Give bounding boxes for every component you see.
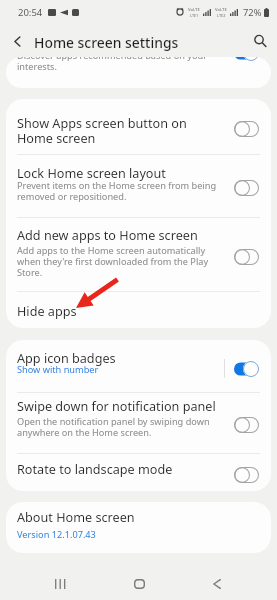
staticText: 20:54 (18, 6, 43, 19)
staticText: Add new apps to Home screen (17, 226, 198, 243)
button[interactable]: Lock Home screen layout (6, 155, 271, 217)
staticText: LTE1 (190, 13, 199, 18)
staticText: Hide apps (17, 302, 77, 319)
button[interactable]: Back (199, 566, 235, 600)
staticText: 72% (243, 6, 262, 19)
button[interactable]: App icon badges (234, 361, 259, 377)
button[interactable]: Show Apps screen button on Home screen (6, 99, 271, 154)
staticText: Discover apps recommended based on your … (17, 57, 207, 72)
button[interactable]: Add new apps to Home screen (234, 249, 259, 265)
staticText: VoLTE (215, 7, 227, 13)
staticText: Home screen settings (34, 33, 179, 52)
button[interactable]: Home (121, 566, 157, 600)
staticText: Show Apps screen button on Home screen (17, 114, 187, 147)
staticText: Swipe down for notification panel (17, 397, 216, 414)
button[interactable]: Navigate up (0, 24, 34, 58)
staticText: VoLTE (188, 7, 200, 13)
button[interactable]: Add new apps to Home screen (6, 218, 271, 291)
button[interactable]: App icon badges (6, 340, 271, 392)
button[interactable]: Rotate to landscape mode (234, 467, 259, 483)
staticText: Prevent items on the Home screen from be… (17, 179, 217, 202)
button[interactable]: Discover apps recommended based on your … (6, 57, 271, 88)
staticText: Show with number (17, 363, 99, 376)
button[interactable]: Show Apps screen button on Home screen (234, 121, 259, 137)
staticText: Lock Home screen layout (17, 164, 166, 181)
button[interactable]: Hide apps (6, 292, 271, 328)
button[interactable]: About Home screen (6, 502, 271, 553)
button[interactable]: Rotate to landscape mode (6, 454, 271, 491)
button[interactable]: Swipe down for notification panel (234, 417, 259, 433)
staticText: LTE2 (217, 13, 226, 18)
button[interactable]: Search (243, 24, 277, 58)
staticText: Add apps to the Home screen automaticall… (17, 244, 209, 278)
staticText: App icon badges (17, 349, 116, 366)
button[interactable]: Swipe down for notification panel (6, 393, 271, 453)
button[interactable]: Recents (42, 566, 78, 600)
staticText: Version 12.1.07.43 (17, 528, 96, 541)
staticText: About Home screen (17, 508, 135, 525)
staticText: Open the notification panel by swiping d… (17, 415, 210, 438)
staticText: Rotate to landscape mode (17, 460, 173, 477)
button[interactable]: Lock Home screen layout (234, 180, 259, 196)
